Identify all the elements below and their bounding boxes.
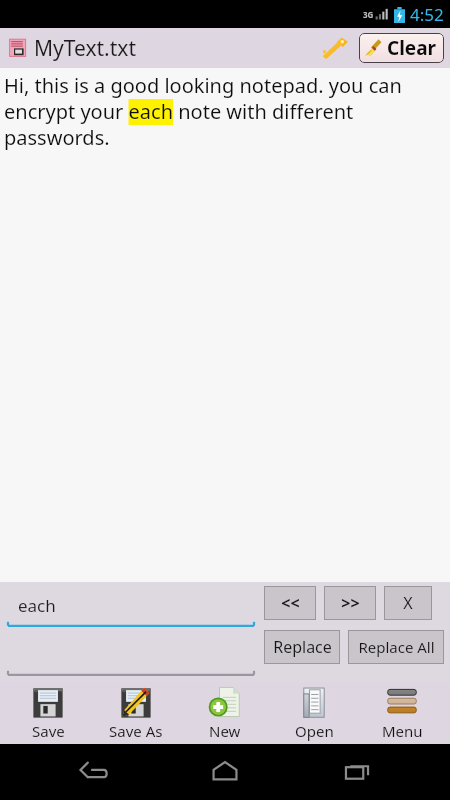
staticText: each — [18, 594, 56, 617]
staticText: Menu — [382, 721, 423, 741]
button[interactable]: Replace All — [348, 630, 444, 664]
staticText: Replace — [273, 636, 332, 658]
staticText: Save As — [109, 721, 163, 741]
staticText: << — [281, 592, 300, 614]
staticText: >> — [341, 592, 360, 614]
button[interactable]: Replace — [264, 630, 340, 664]
staticText: Open — [295, 721, 334, 741]
staticText: Hi, this is a good looking notepad. you … — [4, 72, 446, 151]
button[interactable]: Menu — [361, 682, 443, 744]
staticText: Replace All — [358, 637, 435, 657]
staticText: Clear — [387, 35, 437, 61]
button[interactable]: Recent apps — [318, 748, 396, 796]
button[interactable]: New — [184, 682, 266, 744]
staticText: New — [209, 721, 241, 741]
staticText: 3G — [363, 9, 374, 20]
staticText: MyText.txt — [34, 34, 136, 63]
button[interactable]: Clear — [359, 33, 444, 63]
button[interactable] — [6, 635, 256, 676]
button[interactable]: Home — [186, 748, 264, 796]
button[interactable]: << — [264, 586, 316, 620]
staticText: X — [403, 592, 413, 614]
staticText: 4:52 — [410, 3, 444, 26]
button[interactable]: X — [384, 586, 432, 620]
staticText: Save — [32, 721, 65, 741]
button[interactable]: Encrypt with password — [317, 33, 353, 63]
button[interactable]: Save As — [95, 682, 177, 744]
button[interactable]: Open — [273, 682, 355, 744]
button[interactable]: each — [6, 586, 256, 627]
button[interactable]: Save — [7, 682, 89, 744]
button[interactable]: Back — [54, 748, 132, 796]
button[interactable]: >> — [324, 586, 376, 620]
